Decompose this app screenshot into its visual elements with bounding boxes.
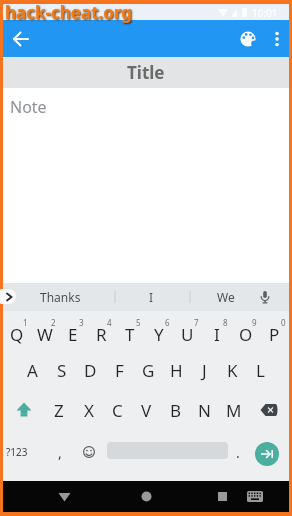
staticText: H [170, 359, 183, 382]
button[interactable]: C [103, 396, 132, 424]
button[interactable]: ?123 [3, 438, 31, 466]
button[interactable] [132, 481, 160, 512]
staticText: Q [10, 323, 24, 346]
staticText: R [96, 323, 107, 346]
staticText: 9 [252, 317, 257, 327]
staticText: G [142, 359, 155, 382]
staticText: 4 [107, 317, 112, 327]
button[interactable]: K [218, 356, 246, 384]
button[interactable]: V [132, 396, 161, 424]
staticText: Note [10, 96, 47, 118]
staticText: Thanks [40, 289, 81, 305]
staticText: M [226, 399, 242, 422]
button[interactable]: U [173, 320, 202, 348]
staticText: E [68, 323, 78, 346]
button[interactable]: A [18, 356, 47, 384]
staticText: 5 [136, 317, 141, 327]
button[interactable] [248, 396, 289, 424]
staticText: . [236, 443, 240, 462]
button[interactable]: M [219, 396, 248, 424]
button[interactable] [75, 438, 103, 466]
staticText: 1 [23, 317, 28, 327]
staticText: S [57, 359, 67, 382]
button[interactable] [252, 283, 278, 311]
button[interactable]: I [202, 320, 231, 348]
staticText: T [125, 323, 135, 346]
button[interactable]: D [76, 356, 105, 384]
button[interactable]: Z [44, 396, 74, 424]
button[interactable]: F [105, 356, 134, 384]
button[interactable]: , [49, 438, 71, 466]
button[interactable]: . [228, 438, 248, 466]
button[interactable]: Title [3, 57, 289, 88]
button[interactable] [255, 442, 279, 466]
staticText: We [217, 289, 235, 305]
button[interactable]: X [74, 396, 103, 424]
staticText: I [214, 323, 220, 346]
button[interactable]: I [114, 283, 188, 311]
button[interactable]: J [190, 356, 218, 384]
staticText: W [37, 323, 53, 346]
staticText: F [115, 359, 124, 382]
button[interactable]: B [161, 396, 190, 424]
staticText: U [181, 323, 194, 346]
button[interactable]: T [115, 320, 144, 348]
button[interactable] [50, 481, 78, 512]
button[interactable] [0, 289, 16, 304]
button[interactable] [241, 481, 269, 512]
button[interactable]: H [162, 356, 190, 384]
staticText: 7 [194, 317, 199, 327]
staticText: 3 [79, 317, 84, 327]
staticText: 10:01 [252, 6, 278, 20]
button[interactable]: Thanks [15, 283, 105, 311]
staticText: 8 [223, 317, 228, 327]
button[interactable] [233, 24, 262, 53]
staticText: 0 [281, 317, 286, 327]
button[interactable]: R [87, 320, 115, 348]
button[interactable] [265, 24, 289, 53]
button[interactable]: L [246, 356, 274, 384]
button[interactable]: E [59, 320, 87, 348]
button[interactable]: W [31, 320, 59, 348]
staticText: O [239, 323, 253, 346]
staticText: P [269, 323, 280, 346]
button[interactable]: Note [3, 88, 289, 283]
staticText: L [256, 359, 265, 382]
staticText: , [58, 443, 62, 462]
staticText: Title [127, 61, 165, 84]
button[interactable]: We [189, 283, 263, 311]
staticText: 2 [51, 317, 56, 327]
staticText: D [84, 359, 97, 382]
staticText: hack-cheat.org [5, 1, 133, 24]
staticText: K [227, 359, 238, 382]
button[interactable]: Q [3, 320, 31, 348]
button[interactable]: N [190, 396, 219, 424]
staticText: A [27, 359, 38, 382]
staticText: Z [54, 399, 64, 422]
staticText: N [198, 399, 211, 422]
staticText: B [170, 399, 182, 422]
staticText: V [141, 399, 152, 422]
button[interactable]: Y [144, 320, 173, 348]
button[interactable]: S [47, 356, 76, 384]
button[interactable]: P [260, 320, 289, 348]
button[interactable] [208, 481, 236, 512]
button[interactable] [3, 396, 44, 424]
staticText: I [149, 289, 154, 305]
button[interactable] [7, 25, 35, 53]
staticText: C [112, 399, 123, 422]
button[interactable]: G [134, 356, 162, 384]
staticText: ?123 [6, 445, 28, 459]
staticText: J [202, 359, 207, 382]
staticText: 6 [165, 317, 170, 327]
staticText: Y [154, 323, 164, 346]
button[interactable]: O [231, 320, 260, 348]
staticText: X [84, 399, 94, 422]
